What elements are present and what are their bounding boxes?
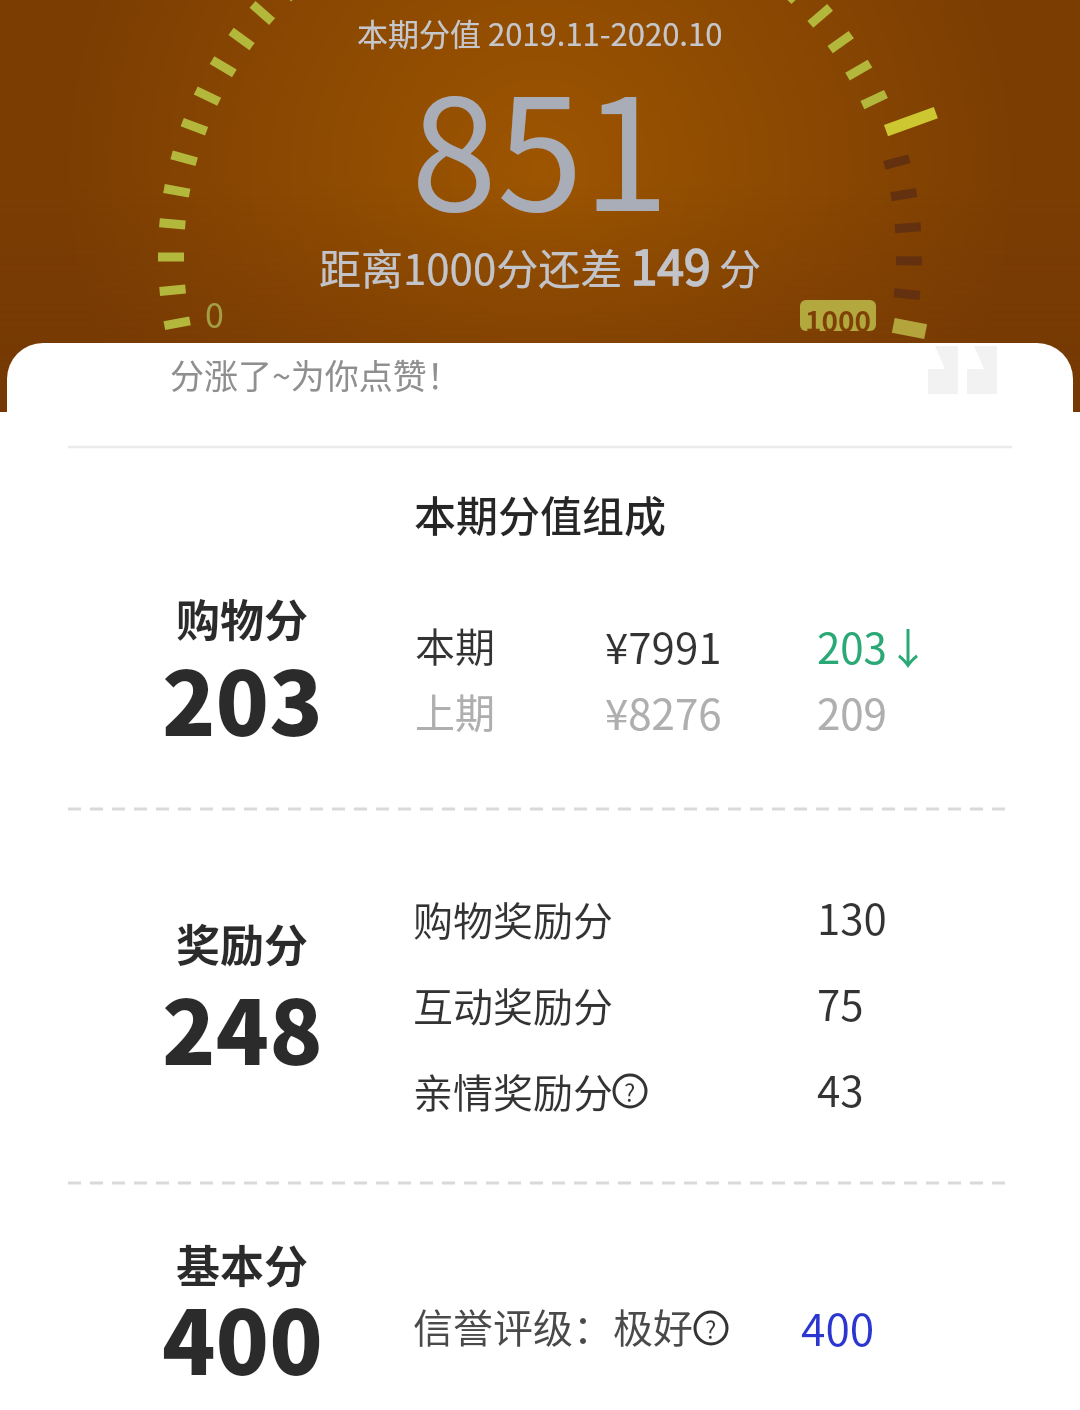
- button[interactable]: 400: [801, 1247, 875, 1407]
- staticText: 130: [817, 886, 887, 947]
- staticText: 203: [162, 634, 323, 761]
- staticText: 本期: [415, 616, 495, 674]
- staticText: ?: [705, 1311, 717, 1346]
- staticText: ¥7991: [605, 615, 722, 676]
- staticText: 400: [801, 1295, 875, 1359]
- staticText: 信誉评级：极好: [413, 1297, 693, 1355]
- button[interactable]: 1000: [800, 300, 876, 331]
- staticText: 购物分: [176, 586, 308, 650]
- staticText: 0: [205, 289, 224, 338]
- staticText: 1000: [805, 300, 872, 331]
- staticText: 分涨了~为你点赞！: [170, 350, 461, 399]
- staticText: 亲情奖励分: [413, 1062, 613, 1120]
- staticText: 购物奖励分: [413, 890, 613, 948]
- staticText: 203↓: [817, 615, 929, 676]
- staticText: 400: [162, 1273, 323, 1400]
- button[interactable]: [150, 350, 930, 400]
- staticText: ?: [624, 1074, 636, 1109]
- staticText: 基本分: [176, 1232, 308, 1296]
- staticText: 43: [817, 1058, 864, 1119]
- staticText: 248: [162, 963, 323, 1090]
- staticText: 209: [817, 681, 887, 742]
- staticText: 互动奖励分: [413, 976, 613, 1034]
- staticText: ¥8276: [605, 681, 722, 742]
- button[interactable]: ?: [611, 1072, 649, 1110]
- staticText: 距离1000分还差 149 分: [319, 229, 761, 299]
- staticText: 本期分值组成: [414, 483, 667, 544]
- staticText: 上期: [415, 682, 495, 740]
- staticText: 奖励分: [176, 911, 308, 975]
- staticText: 75: [817, 972, 864, 1033]
- staticText: 本期分值 2019.11-2020.10: [357, 10, 723, 55]
- button[interactable]: ?: [692, 1309, 730, 1347]
- staticText: 851: [411, 31, 670, 255]
